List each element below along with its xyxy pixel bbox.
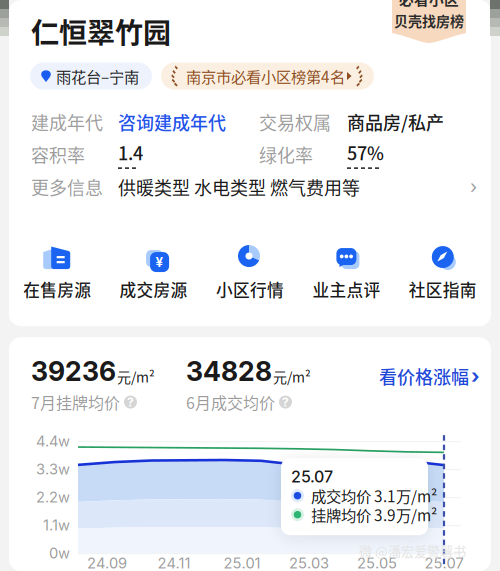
staticText: 25.05 xyxy=(357,554,397,571)
staticText: 25.07 xyxy=(424,554,463,571)
staticText: 供暖类型 水电类型 燃气费用等 xyxy=(118,174,360,200)
staticText: 34828 xyxy=(186,355,272,387)
staticText: 仁恒翠竹园 xyxy=(31,11,171,51)
staticText: ? xyxy=(282,395,289,409)
staticText: 咨询建成年代 xyxy=(118,109,226,135)
staticText: 25.07 xyxy=(291,467,333,486)
staticText: 雨花台–宁南 xyxy=(56,65,139,87)
staticText: ¥ xyxy=(156,254,164,270)
staticText: 成交均价 3.1万/m² xyxy=(311,485,437,507)
staticText: 微 @潘宏爱警薯书 xyxy=(359,541,466,560)
staticText: 元/m² xyxy=(273,366,311,386)
staticText: 挂牌均价 3.9万/m² xyxy=(311,504,437,526)
staticText: 25.01 xyxy=(223,554,260,571)
staticText: 0w xyxy=(49,544,70,562)
staticText: › xyxy=(471,364,480,388)
staticText: ? xyxy=(127,395,134,409)
staticText: 3.3w xyxy=(36,460,70,478)
button[interactable]: 在售房源 xyxy=(9,243,105,301)
staticText: 1.1w xyxy=(43,516,70,534)
staticText: 24.11 xyxy=(157,554,190,571)
staticText: 绿化率 xyxy=(259,141,313,167)
staticText: 2.2w xyxy=(36,488,70,506)
staticText: 业主点评 xyxy=(312,277,380,301)
staticText: 社区指南 xyxy=(409,277,477,301)
staticText: 6月成交均价 xyxy=(186,390,275,414)
staticText: 39236 xyxy=(31,355,116,387)
staticText: 必看小区 xyxy=(399,0,459,9)
staticText: 成交房源 xyxy=(120,277,188,301)
staticText: 南京市必看小区榜第4名 xyxy=(186,65,345,87)
staticText: 在售房源 xyxy=(23,277,91,301)
staticText: 建成年代 xyxy=(31,109,103,135)
staticText: 57% xyxy=(347,139,384,165)
button[interactable]: 社区指南 xyxy=(395,243,491,301)
staticText: › xyxy=(470,175,477,198)
button[interactable]: 小区行情 xyxy=(202,243,298,301)
staticText: 小区行情 xyxy=(216,277,284,301)
staticText: 看价格涨幅 xyxy=(379,363,469,389)
button[interactable]: ¥ xyxy=(105,243,202,301)
staticText: 商品房/私产 xyxy=(347,109,444,135)
staticText: 容积率 xyxy=(31,141,85,167)
staticText: 24.09 xyxy=(87,554,127,571)
staticText: 交易权属 xyxy=(259,109,331,135)
staticText: 贝壳找房榜 xyxy=(394,10,464,30)
staticText: 1.4 xyxy=(118,139,143,165)
button[interactable]: 看价格涨幅 xyxy=(379,363,480,389)
staticText: 7月挂牌均价 xyxy=(31,390,120,414)
staticText: 更多信息 xyxy=(31,174,103,200)
button[interactable]: 业主点评 xyxy=(298,243,395,301)
staticText: 4.4w xyxy=(36,432,70,450)
staticText: 25.03 xyxy=(289,554,329,571)
staticText: 元/m² xyxy=(117,366,155,386)
